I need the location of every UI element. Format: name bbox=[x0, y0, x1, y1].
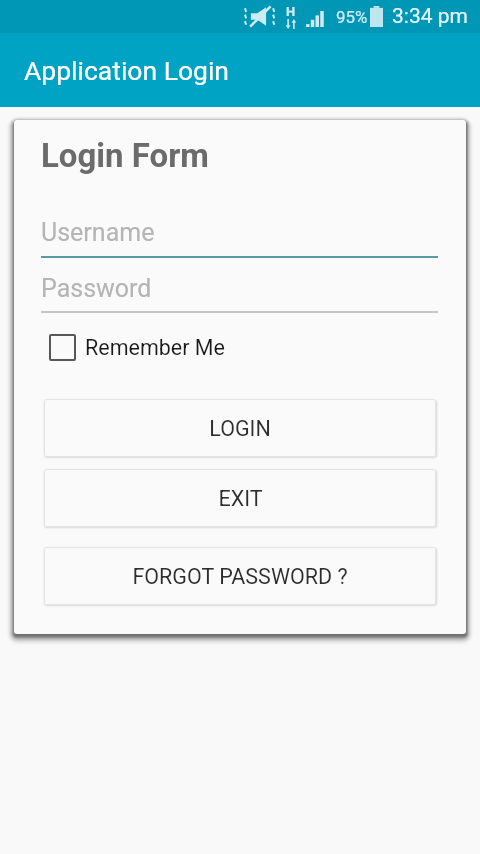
staticText: Remember Me bbox=[85, 335, 226, 360]
staticText: EXIT bbox=[218, 486, 263, 511]
other: HSPA data bbox=[285, 4, 297, 29]
button[interactable]: EXIT bbox=[44, 469, 436, 527]
staticText: Password bbox=[41, 274, 152, 303]
staticText: H bbox=[286, 4, 296, 19]
staticText: FORGOT PASSWORD ? bbox=[132, 564, 348, 589]
staticText: 3:34 pm bbox=[392, 4, 468, 29]
button[interactable]: LOGIN bbox=[44, 399, 436, 457]
other: Sound off bbox=[241, 5, 279, 28]
staticText: Username bbox=[41, 218, 155, 247]
staticText: Login Form bbox=[41, 136, 209, 175]
button[interactable]: Password bbox=[41, 274, 438, 322]
staticText: 95% bbox=[336, 7, 368, 27]
other: Signal strength bbox=[306, 11, 325, 27]
other: Battery bbox=[370, 6, 383, 27]
button[interactable]: Username bbox=[41, 218, 438, 266]
button[interactable]: Remember Me bbox=[49, 334, 226, 361]
staticText: Application Login bbox=[24, 55, 229, 86]
button[interactable]: FORGOT PASSWORD ? bbox=[44, 547, 436, 605]
staticText: LOGIN bbox=[209, 416, 271, 441]
